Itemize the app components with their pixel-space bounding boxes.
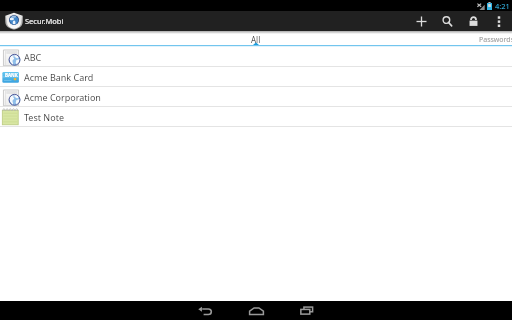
staticText: 4:21 <box>495 1 510 11</box>
button[interactable]: ABC <box>0 47 512 67</box>
button[interactable]: Lock <box>460 11 486 31</box>
staticText: Acme Corporation <box>24 91 101 103</box>
staticText: Acme Bank Card <box>24 71 94 83</box>
staticText: BANK <box>5 72 18 78</box>
button[interactable]: Search <box>434 11 460 31</box>
button[interactable]: Back <box>192 301 218 320</box>
button[interactable]: BANK <box>0 67 512 87</box>
button[interactable]: Add <box>408 11 434 31</box>
button[interactable]: All <box>186 31 326 45</box>
button[interactable]: More options <box>486 11 512 31</box>
staticText: Passwords <box>479 35 512 45</box>
button[interactable]: Test Note <box>0 107 512 127</box>
staticText: All <box>251 34 261 45</box>
staticText: ABC <box>24 51 42 63</box>
button[interactable]: Recent apps <box>294 301 320 320</box>
button[interactable]: Home <box>243 301 269 320</box>
button[interactable]: Secur.Mobi <box>5 12 64 30</box>
button[interactable]: Acme Corporation <box>0 87 512 107</box>
staticText: Secur.Mobi <box>25 16 64 26</box>
button[interactable]: Passwords <box>427 31 512 45</box>
staticText: Test Note <box>24 111 64 123</box>
